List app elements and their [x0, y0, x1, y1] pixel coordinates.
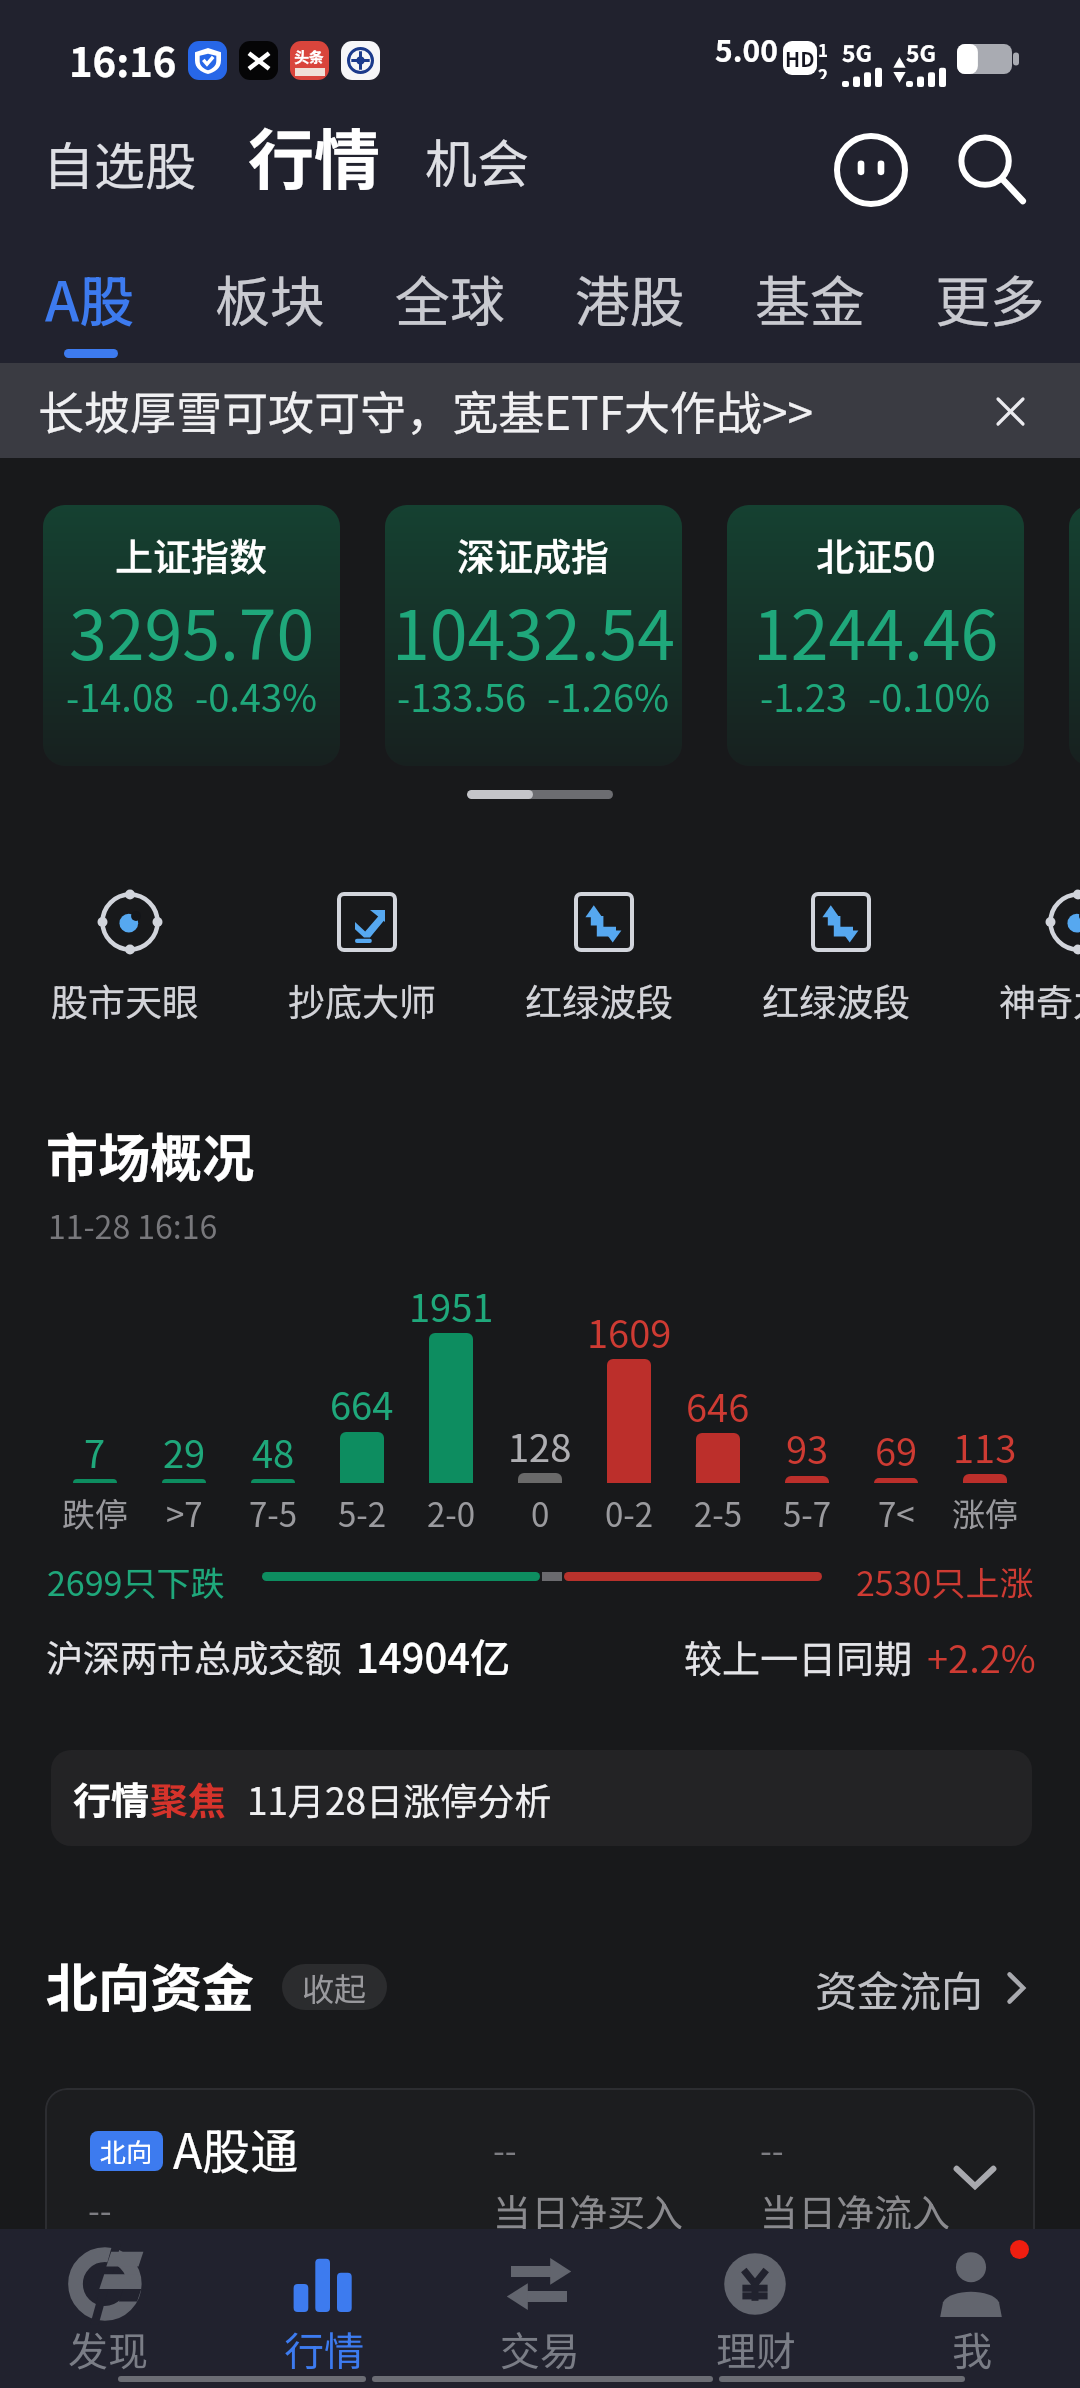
staticText: 当日净流入 [760, 2183, 951, 2238]
button[interactable]: 发现 [0, 2229, 216, 2388]
button[interactable]: 板块 [180, 250, 360, 363]
staticText: 7-5 [249, 1489, 298, 1537]
staticText: 128 [508, 1418, 572, 1473]
button[interactable]: 收起 [282, 1964, 387, 2010]
staticText: 红绿波段 [762, 973, 910, 1027]
staticText: 3295.70 [69, 581, 315, 671]
staticText: >7 [166, 1489, 203, 1537]
button[interactable]: Emoji [826, 125, 916, 215]
staticText: 更多 [935, 258, 1046, 338]
staticText: 跌停 [62, 1489, 128, 1537]
staticText: 14904亿 [356, 1627, 510, 1685]
staticText: 5.00 [715, 27, 778, 70]
button[interactable]: 创业板指 [1069, 505, 1080, 766]
staticText: 自选股 [43, 126, 197, 200]
staticText: 发现 [68, 2320, 148, 2378]
staticText: 深证成指 [457, 527, 610, 582]
staticText: 48 [252, 1424, 295, 1479]
button[interactable]: 红绿波段 [741, 870, 941, 1030]
button[interactable]: 北向 [45, 2088, 1035, 2318]
staticText: 69 [875, 1422, 918, 1477]
staticText: 神奇九转 [999, 973, 1080, 1027]
staticText: -133.56 [397, 668, 527, 723]
staticText: 理财 [716, 2320, 796, 2378]
button[interactable]: 我 [864, 2229, 1080, 2388]
staticText: -1.26% [547, 668, 670, 723]
staticText: HD [785, 44, 815, 73]
button[interactable]: Close banner [982, 383, 1038, 439]
staticText: 股市天眼 [51, 973, 199, 1027]
button[interactable]: 长坡厚雪可攻可守，宽基ETF大作战>> [0, 363, 1080, 458]
staticText: 北向 [100, 2132, 153, 2170]
staticText: 交易 [500, 2320, 580, 2378]
staticText: 港股 [575, 258, 686, 338]
staticText: 沪深两市总成交额 [46, 1629, 342, 1683]
staticText: 北向资金 [46, 1947, 255, 2022]
staticText: 29 [163, 1424, 206, 1479]
staticText: 行情 [248, 107, 380, 203]
button[interactable]: 资金流向 [800, 1958, 1034, 2018]
button[interactable]: 神奇九转 [978, 870, 1080, 1030]
staticText: -0.43% [195, 668, 318, 723]
button[interactable]: A股 [0, 250, 180, 363]
staticText: 板块 [215, 258, 326, 338]
staticText: A股通 [173, 2113, 299, 2183]
button[interactable]: 股市天眼 [30, 870, 230, 1030]
button[interactable]: 红绿波段 [504, 870, 704, 1030]
staticText: -1.23 [760, 668, 848, 723]
staticText: 664 [330, 1376, 394, 1431]
staticText: 红绿波段 [525, 973, 673, 1027]
button[interactable]: 行情 [216, 2229, 432, 2388]
staticText: 0-2 [605, 1489, 654, 1537]
staticText: 5G [842, 35, 873, 68]
staticText: 我 [952, 2320, 992, 2378]
staticText: 2 [818, 62, 829, 79]
button[interactable]: 深证成指 [385, 505, 682, 766]
staticText: 2-0 [427, 1489, 476, 1537]
staticText: 646 [686, 1378, 750, 1433]
button[interactable]: 交易 [432, 2229, 648, 2388]
staticText: -- [493, 2124, 517, 2173]
staticText: -14.08 [66, 668, 175, 723]
staticText: 头条 [294, 46, 325, 68]
button[interactable]: 全球 [360, 250, 540, 363]
staticText: 资金流向 [815, 1958, 984, 2018]
staticText: +2.2% [927, 1629, 1036, 1684]
staticText: 5G [906, 35, 937, 68]
staticText: 5-7 [783, 1489, 832, 1537]
staticText: 2-5 [694, 1489, 743, 1537]
staticText: 聚焦 [150, 1771, 227, 1826]
staticText: 北证50 [816, 527, 936, 582]
button[interactable]: 抄底大师 [267, 870, 467, 1030]
staticText: 1244.46 [753, 581, 999, 671]
staticText: 1609 [587, 1304, 672, 1359]
button[interactable]: 行情 [51, 1750, 1032, 1846]
staticText: 0 [531, 1489, 550, 1537]
button[interactable]: 机会 [414, 112, 541, 209]
staticText: 93 [786, 1420, 829, 1475]
staticText: 113 [953, 1419, 1017, 1474]
button[interactable]: 港股 [540, 250, 720, 363]
staticText: 基金 [755, 258, 866, 338]
staticText: 5-2 [338, 1489, 387, 1537]
staticText: 收起 [302, 1964, 367, 2010]
button[interactable]: 自选股 [32, 115, 208, 211]
staticText: 机会 [425, 123, 530, 198]
button[interactable]: 理财 [648, 2229, 864, 2388]
staticText: 全球 [395, 258, 506, 338]
staticText: 当日净买入 [493, 2183, 684, 2238]
button[interactable]: 上证指数 [43, 505, 340, 766]
staticText: 7< [878, 1489, 915, 1537]
staticText: 11-28 16:16 [48, 1202, 218, 1248]
staticText: 抄底大师 [288, 973, 436, 1027]
button[interactable]: Search [946, 125, 1036, 215]
staticText: -- [88, 2184, 112, 2233]
staticText: -- [760, 2124, 784, 2173]
button[interactable]: 北证50 [727, 505, 1024, 766]
button[interactable]: 行情 [238, 97, 390, 213]
staticText: -0.10% [868, 668, 991, 723]
staticText: A股 [45, 258, 135, 338]
staticText: 行情 [284, 2320, 364, 2378]
button[interactable]: 基金 [720, 250, 900, 363]
button[interactable]: 更多 [900, 250, 1080, 363]
